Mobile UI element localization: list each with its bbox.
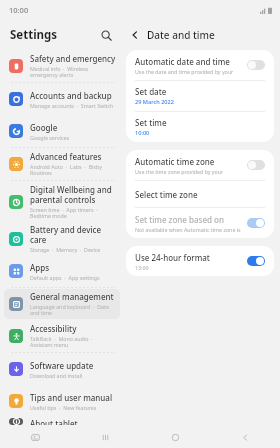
button[interactable]: Toggle on (247, 256, 265, 266)
button[interactable]: Toggle on (247, 218, 265, 228)
button[interactable]: Automatic time zone (135, 150, 265, 180)
button[interactable]: recents (70, 426, 140, 448)
staticText: Default apps · App settings (30, 274, 100, 281)
staticText: Date and time (147, 28, 215, 42)
staticText: About tablet (30, 418, 78, 425)
staticText: 13:00 (135, 264, 149, 271)
staticText: Select time zone (135, 189, 198, 200)
staticText: 29 March 2022 (135, 98, 174, 106)
button[interactable]: Software update (4, 354, 120, 384)
staticText: Android Auto · Labs · Bixby Routines (30, 163, 116, 177)
button[interactable]: Set time zone based on location (135, 208, 265, 238)
staticText: Language and keyboard · Date and time (30, 303, 116, 317)
button[interactable]: Advanced features (4, 149, 120, 179)
button[interactable]: Apps (4, 256, 120, 286)
staticText: Automatic time zone (135, 156, 215, 167)
staticText: General management (30, 291, 114, 302)
staticText: Use 24-hour format (135, 252, 210, 263)
staticText: Not available when Automatic time zone i… (135, 226, 241, 233)
staticText: Screen time · App timers · Bedtime mode (30, 206, 116, 220)
staticText: Set time (135, 117, 167, 128)
staticText: Use the time zone provided by your mobil… (135, 168, 241, 175)
staticText: Useful tips · New features (30, 404, 97, 411)
staticText: Medical info · Wireless emergency alerts (30, 65, 116, 79)
staticText: Google (30, 122, 58, 133)
staticText: Download and install (30, 372, 83, 379)
staticText: Accessibility (30, 323, 77, 334)
staticText: Digital Wellbeing and parental controls (30, 184, 116, 205)
staticText: Manage accounts · Smart Switch (30, 102, 114, 109)
button[interactable]: Set time (135, 112, 265, 142)
button[interactable]: Tips and user manual (4, 386, 120, 416)
staticText: Set time zone based on location (135, 214, 241, 225)
staticText: 10:00 (135, 129, 150, 137)
button[interactable]: General management (4, 289, 120, 319)
staticText: Settings (10, 27, 58, 43)
staticText: Tips and user manual (30, 392, 113, 403)
button[interactable]: Accounts and backup (4, 84, 120, 114)
button[interactable]: Digital Wellbeing and parental controls (4, 182, 120, 222)
staticText: Safety and emergency (30, 53, 116, 64)
staticText: Advanced features (30, 151, 102, 162)
staticText: Battery and device care (30, 224, 116, 245)
button[interactable]: Accessibility (4, 321, 120, 351)
button[interactable]: Back (126, 26, 144, 44)
staticText: TalkBack · Mono audio · Assistant menu (30, 335, 116, 349)
button[interactable]: Safety and emergency (4, 51, 120, 81)
button[interactable]: keyboard (0, 426, 70, 448)
button[interactable]: Automatic date and time (135, 50, 265, 80)
staticText: Use the date and time provided by your n… (135, 68, 241, 75)
button[interactable]: Google (4, 116, 120, 146)
button[interactable]: Select time zone (135, 181, 265, 207)
button[interactable]: Use 24-hour format (135, 246, 265, 276)
button[interactable]: About tablet (4, 418, 120, 425)
staticText: 10:00 (9, 5, 29, 15)
staticText: Google services (30, 134, 70, 141)
button[interactable]: Search settings (96, 25, 116, 45)
button[interactable]: Toggle off (247, 60, 265, 70)
button[interactable]: Toggle off (247, 160, 265, 170)
button[interactable]: home (140, 426, 210, 448)
button[interactable]: Set date (135, 81, 265, 111)
button[interactable]: Battery and device care (4, 224, 120, 254)
staticText: Set date (135, 86, 167, 97)
staticText: Software update (30, 360, 94, 371)
staticText: Storage · Memory · Device protection (30, 246, 116, 254)
staticText: Apps (30, 262, 50, 273)
staticText: Automatic date and time (135, 56, 230, 67)
staticText: Accounts and backup (30, 90, 112, 101)
